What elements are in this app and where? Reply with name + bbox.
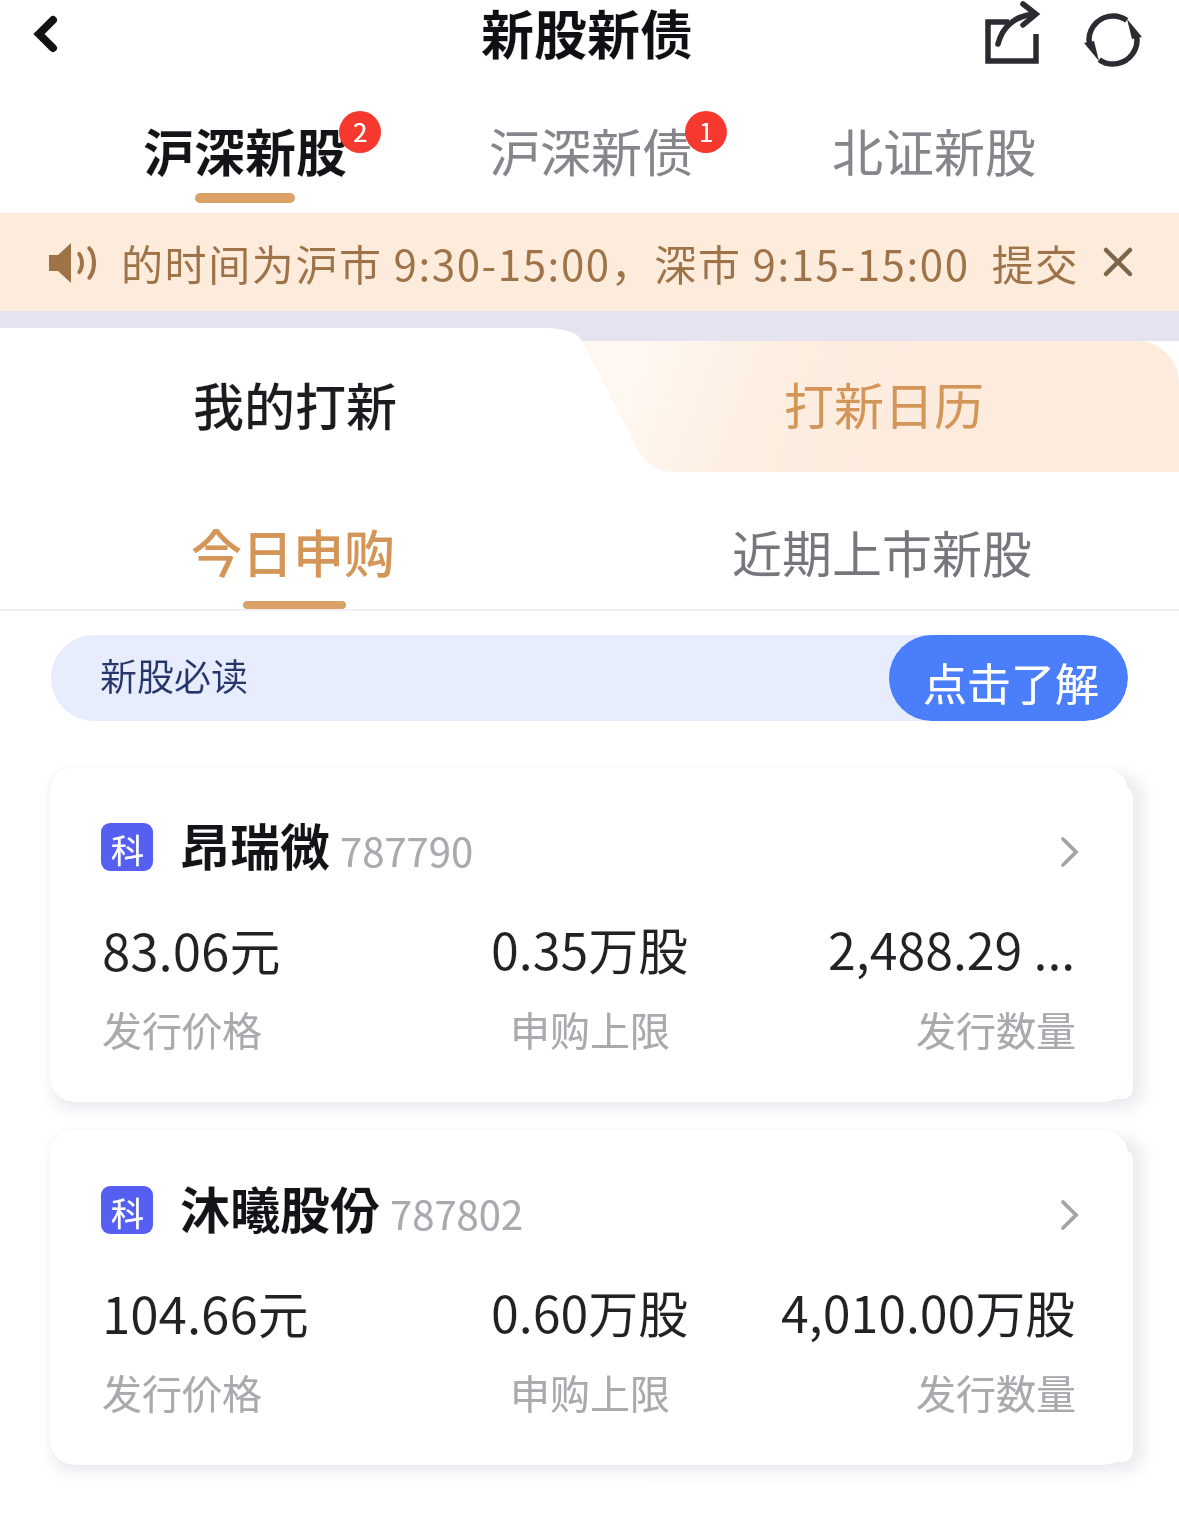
staticText: 新股新债 — [481, 0, 693, 71]
staticText: 4,010.00万股 — [781, 1275, 1076, 1347]
button[interactable]: 科 — [50, 767, 1128, 1102]
staticText: 2,488.29 ... — [828, 912, 1076, 984]
button[interactable]: 新股必读 — [51, 635, 1128, 721]
staticText: 0.35万股 — [491, 912, 689, 984]
staticText: 83.06元 — [102, 912, 281, 986]
staticText: 发行价格 — [102, 1000, 262, 1058]
staticText: 申购上限 — [510, 1363, 670, 1421]
staticText: 沪深新股 — [143, 113, 348, 187]
staticText: 新股必读 — [100, 648, 248, 702]
button[interactable]: 我的打新 — [0, 328, 620, 473]
staticText: 北证新股 — [832, 113, 1037, 187]
button[interactable]: 科 — [50, 1130, 1128, 1465]
staticText: 昂瑞微 — [180, 808, 330, 880]
button[interactable]: 北证新股 — [763, 92, 1103, 213]
staticText: 0.60万股 — [491, 1275, 689, 1347]
staticText: 沪深新债 — [489, 113, 694, 187]
staticText: 1 — [699, 112, 714, 150]
staticText: 沐曦股份 — [180, 1171, 380, 1243]
staticText: 104.66元 — [102, 1275, 309, 1349]
button[interactable]: Refresh — [1081, 8, 1145, 72]
staticText: 发行数量 — [916, 1000, 1076, 1058]
staticText: 的时间为沪市 9:30-15:00，深市 9:15-15:00 提交 — [121, 232, 1079, 293]
staticText: 今日申购 — [191, 514, 396, 588]
button[interactable]: Close — [1090, 234, 1146, 290]
staticText: 近期上市新股 — [732, 515, 1032, 587]
staticText: 科 — [111, 1188, 144, 1234]
button[interactable]: 今日申购 — [120, 473, 470, 611]
staticText: 787802 — [390, 1184, 524, 1242]
button[interactable]: Share — [978, 12, 1042, 76]
staticText: 2 — [353, 112, 368, 150]
staticText: 发行数量 — [916, 1363, 1076, 1421]
staticText: 科 — [111, 825, 144, 871]
button[interactable]: Back — [12, 4, 80, 72]
staticText: 点击了解 — [923, 650, 1099, 714]
staticText: 我的打新 — [193, 367, 398, 441]
staticText: 打新日历 — [784, 367, 984, 439]
button[interactable]: 打新日历 — [680, 328, 1179, 473]
button[interactable]: 近期上市新股 — [690, 473, 1080, 611]
staticText: 申购上限 — [510, 1000, 670, 1058]
staticText: 787790 — [340, 821, 474, 879]
button[interactable]: 沪深新债 — [420, 92, 760, 213]
button[interactable]: 沪深新股 — [74, 92, 414, 213]
staticText: 发行价格 — [102, 1363, 262, 1421]
button[interactable]: 点击了解 — [889, 635, 1128, 721]
